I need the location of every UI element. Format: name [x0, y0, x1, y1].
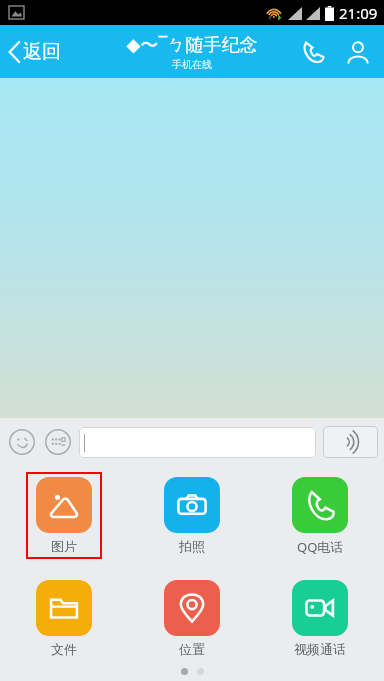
button[interactable]: Emoji	[7, 427, 37, 457]
button[interactable]: 文件	[26, 575, 102, 662]
button[interactable]: Voice message	[323, 426, 378, 458]
staticText: 视频通话	[294, 641, 346, 657]
staticText: 图片	[51, 538, 77, 554]
button[interactable]: 返回	[0, 25, 71, 78]
button[interactable]: 位置	[154, 575, 230, 662]
staticText: QQ电话	[297, 538, 344, 556]
staticText: 位置	[179, 641, 205, 657]
staticText: 返回	[23, 40, 61, 64]
button[interactable]: Keyboard	[43, 427, 73, 457]
button[interactable]: Profile	[336, 25, 384, 78]
staticText: ◆〜¯ㄅ随手纪念	[126, 32, 258, 57]
button[interactable]: 视频通话	[282, 575, 358, 662]
staticText: 拍照	[179, 538, 205, 554]
staticText: 文件	[51, 641, 77, 657]
button[interactable]: Voice call	[291, 25, 336, 78]
button[interactable]	[79, 427, 316, 458]
button[interactable]: 图片	[26, 472, 102, 559]
button[interactable]: QQ电话	[282, 472, 358, 561]
button[interactable]: 拍照	[154, 472, 230, 559]
staticText: 21:09	[339, 3, 378, 23]
staticText: 手机在线	[172, 58, 212, 71]
